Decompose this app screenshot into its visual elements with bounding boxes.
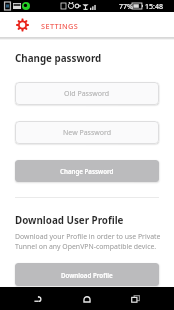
staticText: Download Profile xyxy=(61,271,113,279)
staticText: Download your Profile in order to use Pr… xyxy=(15,232,162,251)
staticText: SETTINGS xyxy=(41,21,79,31)
staticText: New Password xyxy=(63,128,112,138)
button[interactable]: Back xyxy=(27,287,49,310)
staticText: Old Password xyxy=(64,89,110,99)
staticText: Change Password xyxy=(60,167,114,175)
button[interactable]: New Password xyxy=(15,121,159,144)
staticText: Change password xyxy=(15,52,102,65)
staticText: Download User Profile xyxy=(15,214,124,227)
button[interactable]: Settings xyxy=(16,18,29,32)
button[interactable]: Home xyxy=(76,287,98,310)
staticText: 77% xyxy=(119,2,133,12)
button[interactable]: Old Password xyxy=(15,82,159,105)
button[interactable]: Recents xyxy=(124,287,146,310)
button[interactable]: Download Profile xyxy=(15,263,159,286)
button[interactable]: Change Password xyxy=(15,160,159,182)
staticText: 15:48 xyxy=(145,2,163,12)
